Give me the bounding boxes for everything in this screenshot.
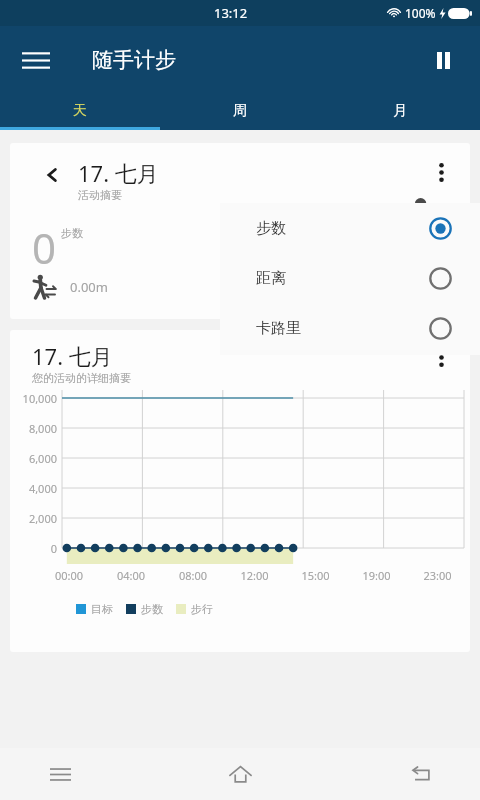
button[interactable]: Previous day xyxy=(38,161,66,189)
staticText: 12:00 xyxy=(224,568,285,583)
staticText: 10,000 xyxy=(10,391,57,406)
staticText: 步数 xyxy=(61,226,83,240)
staticText: 距离 xyxy=(256,269,286,288)
staticText: 8,000 xyxy=(10,421,57,436)
staticText: 0.00卡 xyxy=(260,278,299,296)
staticText: 04:00 xyxy=(100,568,162,583)
button[interactable]: Home xyxy=(216,750,264,798)
button[interactable]: Recent apps xyxy=(36,750,84,798)
staticText: 13:12 xyxy=(214,4,248,22)
staticText: 随手计步 xyxy=(92,47,176,73)
staticText: 4,000 xyxy=(10,481,57,496)
staticText: 100% xyxy=(405,5,436,21)
button[interactable]: Back xyxy=(396,750,444,798)
staticText: 周 xyxy=(233,102,247,120)
staticText: 步数 xyxy=(141,602,163,616)
button[interactable]: 卡路里 xyxy=(220,303,480,353)
button[interactable]: 周 xyxy=(160,94,320,127)
staticText: 天 xyxy=(73,102,87,120)
button[interactable]: More options xyxy=(424,340,458,374)
button[interactable]: 月 xyxy=(320,94,480,127)
button[interactable]: Previous day xyxy=(10,143,470,319)
staticText: 步行 xyxy=(191,602,213,616)
button[interactable]: Pause step counting xyxy=(422,39,464,81)
staticText: 23:00 xyxy=(407,568,468,583)
staticText: 15:00 xyxy=(285,568,346,583)
staticText: 00:00 xyxy=(38,568,100,583)
staticText: 卡路里 xyxy=(256,319,301,338)
button[interactable]: 步数 xyxy=(220,203,480,253)
staticText: 17. 七月 xyxy=(32,341,113,371)
staticText: 0 xyxy=(10,541,57,556)
staticText: 6,000 xyxy=(10,451,57,466)
button[interactable]: More options xyxy=(424,155,458,189)
button[interactable]: Open navigation menu xyxy=(14,38,58,82)
staticText: 您的活动的详细摘要 xyxy=(32,371,131,385)
staticText: 月 xyxy=(393,102,407,120)
staticText: 0.00m xyxy=(70,278,108,296)
staticText: 08:00 xyxy=(162,568,224,583)
button[interactable]: 距离 xyxy=(220,253,480,303)
button[interactable]: 17. 七月 xyxy=(10,330,470,652)
staticText: 19:00 xyxy=(346,568,407,583)
staticText: 2,000 xyxy=(10,511,57,526)
staticText: 目标 xyxy=(91,602,113,616)
staticText: 步数 xyxy=(256,219,286,238)
staticText: 活动摘要 xyxy=(78,188,122,202)
button[interactable]: 天 xyxy=(0,94,160,127)
staticText: 0 xyxy=(32,219,57,276)
staticText: 17. 七月 xyxy=(78,158,159,188)
